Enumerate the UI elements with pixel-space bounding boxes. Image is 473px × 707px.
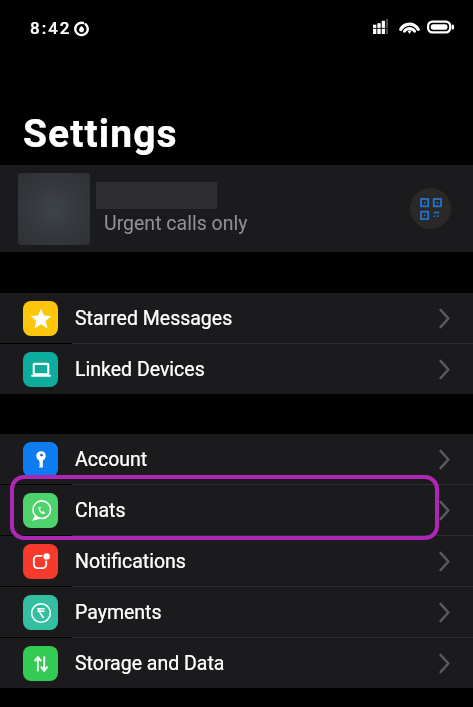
staticText: Account bbox=[75, 448, 439, 471]
button[interactable]: Storage and Data bbox=[0, 638, 473, 688]
button[interactable]: Starred Messages bbox=[0, 293, 473, 343]
staticText: Linked Devices bbox=[75, 358, 439, 381]
button[interactable]: Chats bbox=[0, 485, 473, 535]
staticText: Settings bbox=[23, 111, 178, 157]
button[interactable]: Notifications bbox=[0, 536, 473, 586]
button[interactable]: Account bbox=[0, 434, 473, 484]
staticText: Storage and Data bbox=[75, 652, 439, 675]
button[interactable]: QR code bbox=[410, 188, 451, 229]
staticText: Payments bbox=[75, 601, 439, 624]
button[interactable]: Payments bbox=[0, 587, 473, 637]
staticText: Urgent calls only bbox=[104, 212, 248, 235]
staticText: Notifications bbox=[75, 550, 439, 573]
button[interactable]: Urgent calls only bbox=[0, 165, 473, 252]
staticText: Starred Messages bbox=[75, 307, 439, 330]
staticText: Chats bbox=[75, 499, 439, 522]
staticText: 8:42 bbox=[30, 18, 72, 38]
button[interactable]: Linked Devices bbox=[0, 344, 473, 394]
